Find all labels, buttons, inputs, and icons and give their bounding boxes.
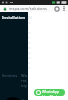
button[interactable]: WhatsApp Live Chat [34, 89, 65, 96]
button[interactable]: Tab switcher [53, 5, 60, 12]
staticText: WhatsApp Live Chat [42, 89, 65, 96]
button[interactable]: Installation [2, 15, 26, 20]
button[interactable]: More options [60, 5, 67, 12]
staticText: Installation [2, 15, 26, 20]
button[interactable]: Warranty [21, 73, 28, 88]
button[interactable]: Services [2, 73, 18, 78]
staticText: Services [2, 73, 18, 78]
staticText: inspa.com/solutions [9, 6, 47, 11]
staticText: Warranty [21, 73, 28, 88]
other: Site information [3, 7, 7, 11]
